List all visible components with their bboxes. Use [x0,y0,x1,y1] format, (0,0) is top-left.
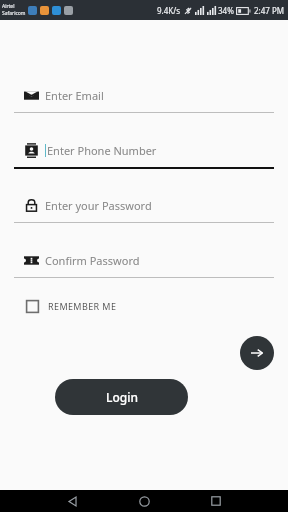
staticText: 34% [218,5,234,16]
staticText: 2:47 PM [254,5,285,16]
button[interactable]: REMEMBER ME [24,294,119,318]
staticText: Enter your Password [45,198,152,213]
staticText: Safaricom [2,10,26,17]
staticText: REMEMBER ME [48,300,117,312]
button[interactable]: Phone number [14,133,274,169]
staticText: Enter Phone Number [47,143,157,158]
staticText: Airtel [2,3,15,10]
button[interactable]: Login [55,379,188,415]
staticText: 9.4K/s [157,5,181,16]
button[interactable]: Confirm password [14,243,274,278]
staticText: Enter Email [45,88,104,103]
button[interactable]: Next [240,336,274,370]
button[interactable]: Email [14,78,274,113]
staticText: Login [106,389,138,405]
button[interactable]: Recent apps [180,490,252,512]
staticText: Confirm Password [45,253,140,268]
button[interactable]: Password [14,188,274,223]
button[interactable]: Home [108,490,180,512]
button[interactable]: Back [36,490,108,512]
